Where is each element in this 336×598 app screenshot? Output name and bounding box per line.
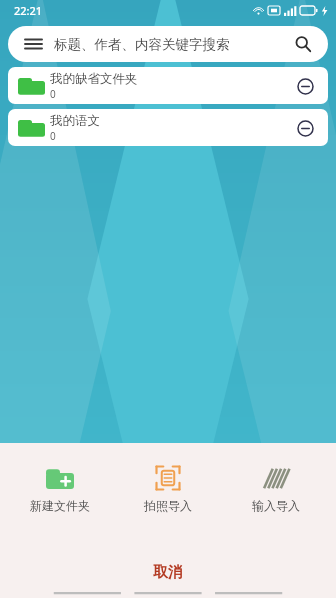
staticText: 输入导入 — [252, 498, 300, 513]
staticText: 我的缺省文件夹 — [50, 71, 138, 87]
button[interactable]: 我的缺省文件夹 — [8, 67, 328, 104]
staticText: 标题、作者、内容关键字搜索 — [54, 36, 230, 53]
staticText: 拍照导入 — [144, 498, 192, 513]
button[interactable]: 新建文件夹 — [12, 461, 108, 515]
staticText: 0 — [50, 129, 56, 143]
button[interactable]: Search — [292, 33, 314, 55]
staticText: 22:21 — [14, 3, 43, 18]
button[interactable]: 拍照导入 — [120, 461, 216, 515]
staticText: 取消 — [153, 563, 183, 582]
button[interactable]: Menu — [22, 33, 44, 55]
staticText: 0 — [50, 87, 56, 101]
button[interactable]: Remove folder — [292, 73, 318, 99]
button[interactable]: Menu — [8, 26, 328, 62]
button[interactable]: 输入导入 — [228, 461, 324, 515]
button[interactable]: 我的语文 — [8, 109, 328, 146]
button[interactable]: 取消 — [0, 555, 336, 589]
button[interactable]: Remove folder — [292, 115, 318, 141]
staticText: 我的语文 — [50, 113, 100, 129]
staticText: 新建文件夹 — [30, 498, 90, 513]
